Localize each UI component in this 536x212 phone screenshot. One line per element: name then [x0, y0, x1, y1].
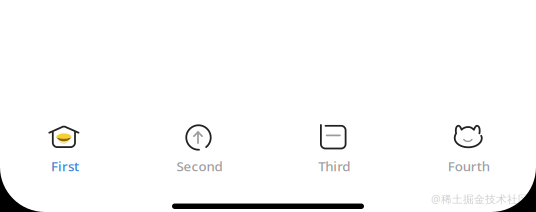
button[interactable]: Second — [134, 124, 268, 173]
staticText: First — [51, 157, 79, 175]
staticText: Second — [176, 157, 222, 175]
button[interactable]: Fourth — [402, 124, 536, 173]
button[interactable]: First — [0, 124, 134, 173]
staticText: @稀土掘金技术社区 — [431, 192, 529, 206]
staticText: Fourth — [448, 157, 490, 175]
staticText: Third — [318, 157, 350, 175]
button[interactable]: Third — [268, 124, 402, 173]
